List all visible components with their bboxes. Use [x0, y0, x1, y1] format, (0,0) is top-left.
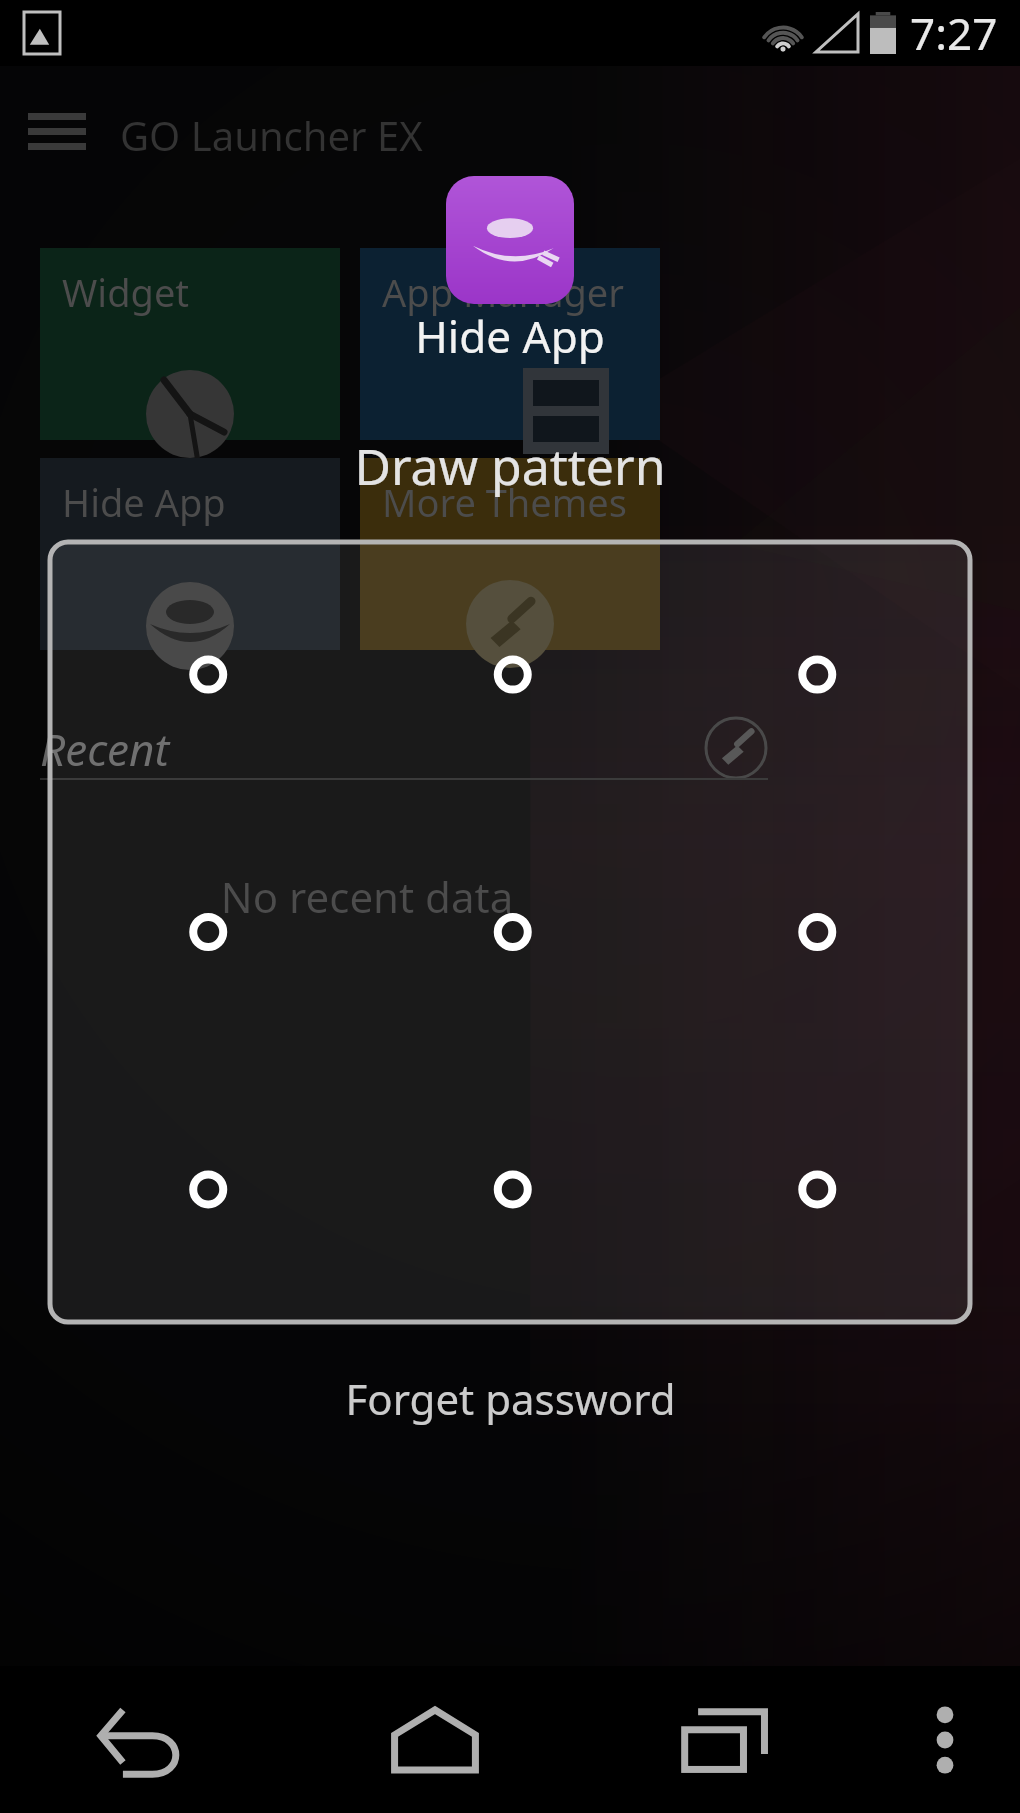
button[interactable]: Forget password — [0, 1358, 1020, 1438]
button[interactable]: Menu — [26, 104, 88, 166]
button[interactable]: Recents — [580, 1666, 870, 1813]
staticText: Hide App — [0, 306, 1020, 366]
staticText: Forget password — [345, 1370, 676, 1427]
button[interactable]: Themes — [704, 716, 768, 780]
button[interactable]: More options — [870, 1666, 1020, 1813]
button[interactable]: App Manager — [360, 248, 660, 440]
button[interactable]: Back — [0, 1666, 290, 1813]
staticText: Draw pattern — [0, 432, 1020, 500]
button[interactable]: Pattern lock — [50, 542, 970, 1322]
staticText: 7:27 — [910, 3, 998, 63]
staticText: More Themes — [382, 476, 627, 528]
staticText: App Manager — [382, 266, 624, 318]
button[interactable]: Widget — [40, 248, 340, 440]
staticText: GO Launcher EX — [120, 108, 423, 162]
button[interactable]: More Themes — [360, 458, 660, 650]
button[interactable]: Hide App — [40, 458, 340, 650]
button[interactable] — [446, 176, 574, 304]
staticText: Hide App — [62, 476, 226, 528]
staticText: No recent data — [0, 868, 734, 925]
staticText: Recent — [40, 719, 170, 779]
staticText: Widget — [62, 266, 190, 318]
button[interactable]: Home — [290, 1666, 580, 1813]
